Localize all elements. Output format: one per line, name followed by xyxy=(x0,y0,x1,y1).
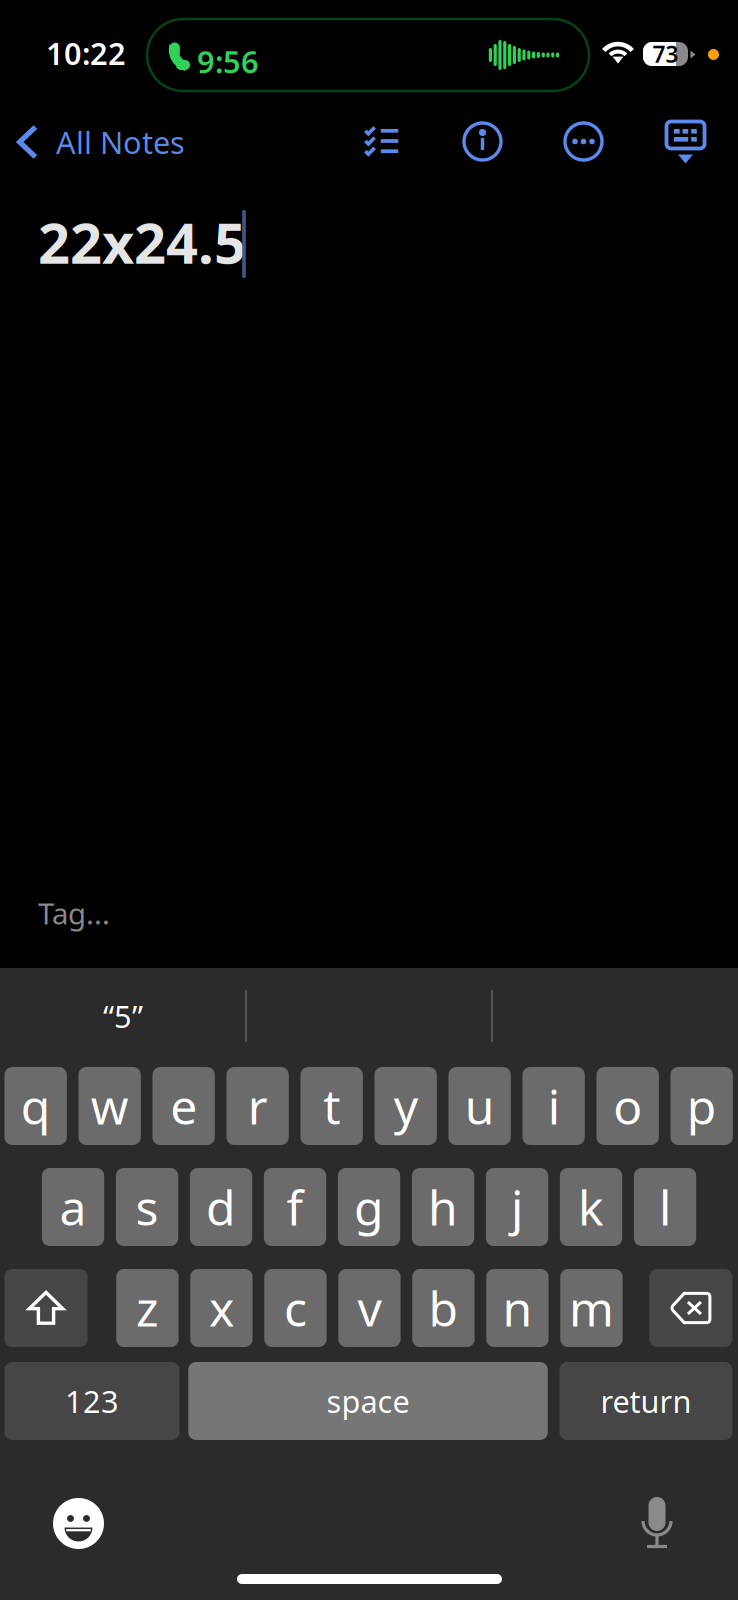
staticText: l xyxy=(659,1175,671,1239)
staticText: 10:22 xyxy=(46,33,126,73)
staticText: g xyxy=(354,1175,384,1239)
button[interactable]: q xyxy=(4,1067,67,1145)
button[interactable]: t xyxy=(300,1067,363,1145)
button[interactable]: i xyxy=(522,1067,585,1145)
button[interactable]: v xyxy=(338,1269,401,1347)
button[interactable]: b xyxy=(412,1269,475,1347)
button[interactable]: a xyxy=(42,1168,104,1246)
button[interactable]: y xyxy=(374,1067,437,1145)
button[interactable]: x xyxy=(190,1269,253,1347)
staticText: h xyxy=(428,1175,458,1239)
staticText: 73 xyxy=(652,39,678,69)
button[interactable]: Info xyxy=(464,123,501,160)
staticText: All Notes xyxy=(56,122,185,162)
button[interactable]: 123 xyxy=(4,1362,179,1440)
button[interactable]: space xyxy=(188,1362,548,1440)
staticText: “5” xyxy=(103,996,143,1036)
button[interactable]: More xyxy=(565,123,602,160)
button[interactable]: c xyxy=(264,1269,327,1347)
button[interactable]: w xyxy=(78,1067,141,1145)
button[interactable]: Emoji xyxy=(53,1498,104,1549)
staticText: r xyxy=(248,1074,268,1138)
staticText: b xyxy=(428,1276,458,1340)
button[interactable]: p xyxy=(670,1067,733,1145)
staticText: i xyxy=(548,1074,560,1138)
staticText: t xyxy=(323,1074,340,1138)
button[interactable]: All Notes xyxy=(17,124,247,160)
staticText: d xyxy=(206,1175,236,1239)
button[interactable]: Shift xyxy=(4,1269,87,1347)
staticText: k xyxy=(578,1175,604,1239)
staticText: x xyxy=(209,1276,234,1340)
button[interactable]: r xyxy=(226,1067,289,1145)
staticText: n xyxy=(502,1276,532,1340)
button[interactable]: j xyxy=(486,1168,548,1246)
button[interactable]: h xyxy=(412,1168,474,1246)
button[interactable]: m xyxy=(560,1269,623,1347)
button[interactable]: k xyxy=(560,1168,622,1246)
button[interactable]: Dictate xyxy=(640,1497,674,1549)
staticText: m xyxy=(569,1276,614,1340)
button[interactable]: l xyxy=(634,1168,696,1246)
button[interactable]: z xyxy=(116,1269,179,1347)
staticText: p xyxy=(687,1074,717,1138)
button[interactable]: Hide Keyboard xyxy=(665,120,706,166)
button[interactable]: e xyxy=(152,1067,215,1145)
staticText: z xyxy=(136,1276,159,1340)
staticText: j xyxy=(511,1175,523,1239)
button[interactable]: n xyxy=(486,1269,549,1347)
staticText: f xyxy=(286,1175,303,1239)
staticText: e xyxy=(170,1074,197,1138)
button[interactable]: return xyxy=(559,1362,732,1440)
button[interactable]: s xyxy=(116,1168,178,1246)
staticText: Tag... xyxy=(38,893,110,932)
staticText: q xyxy=(21,1074,51,1138)
staticText: w xyxy=(91,1074,129,1138)
staticText: s xyxy=(136,1175,159,1239)
staticText: return xyxy=(600,1381,691,1421)
button[interactable]: f xyxy=(264,1168,326,1246)
button[interactable]: u xyxy=(448,1067,511,1145)
button[interactable]: o xyxy=(596,1067,659,1145)
staticText: c xyxy=(284,1276,307,1340)
staticText: y xyxy=(394,1074,418,1138)
staticText: space xyxy=(327,1381,410,1421)
staticText: v xyxy=(357,1276,381,1340)
button[interactable]: Delete xyxy=(649,1269,732,1347)
button[interactable]: d xyxy=(190,1168,252,1246)
button[interactable]: g xyxy=(338,1168,400,1246)
staticText: 123 xyxy=(65,1381,119,1421)
button[interactable]: Checklist xyxy=(364,126,399,157)
staticText: a xyxy=(59,1175,86,1239)
staticText: o xyxy=(613,1074,642,1138)
staticText: u xyxy=(465,1074,495,1138)
staticText: 22x24.5 xyxy=(38,205,246,279)
staticText: 9:56 xyxy=(197,41,259,82)
button[interactable]: “5” xyxy=(0,985,246,1047)
